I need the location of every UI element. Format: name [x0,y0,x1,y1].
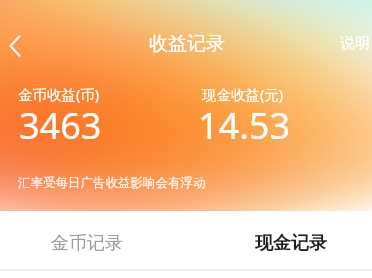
staticText: 金币收益(币) [18,84,100,104]
button[interactable]: 说明 [330,26,372,61]
button[interactable]: 现金记录 [228,214,354,272]
staticText: 3463 [19,101,102,150]
staticText: 收益记录 [149,32,225,56]
staticText: 14.53 [198,101,291,150]
staticText: 汇率受每日广告收益影响会有浮动 [18,175,206,191]
staticText: 现金收益(元) [202,84,284,104]
button[interactable]: 金币记录 [24,214,150,272]
staticText: 现金记录 [255,232,327,255]
staticText: 说明 [340,34,370,53]
button[interactable]: Back [0,26,35,66]
staticText: 金币记录 [51,232,123,255]
